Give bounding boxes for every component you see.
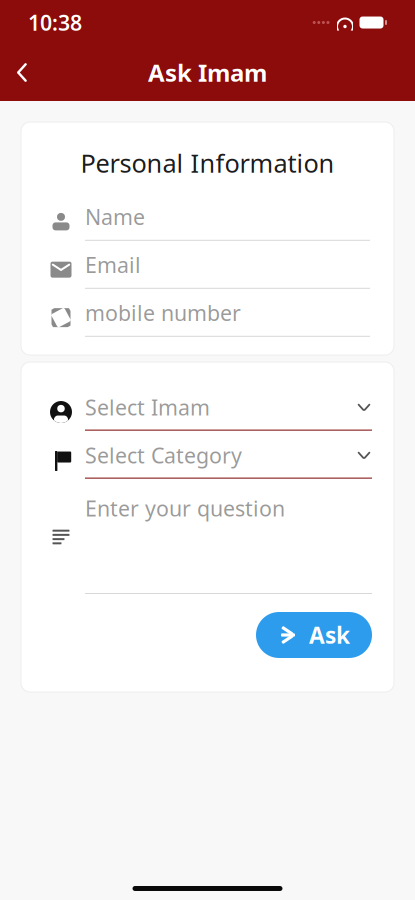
staticText: Select Category [85,441,242,469]
button[interactable]: Name [21,198,394,246]
button[interactable]: Back [0,50,44,94]
staticText: Enter your question [85,494,285,522]
button[interactable]: mobile number [21,294,394,342]
button[interactable]: Ask [256,612,372,658]
staticText: Ask [309,620,350,650]
button[interactable]: Select Category [21,436,394,484]
staticText: Email [85,250,141,279]
staticText: Ask Imam [148,57,267,88]
staticText: mobile number [85,298,241,327]
button[interactable]: Email [21,246,394,294]
button[interactable]: Enter your question [21,484,394,594]
staticText: Select Imam [85,393,210,421]
staticText: Personal Information [80,146,334,180]
button[interactable]: Select Imam [21,388,394,436]
staticText: Name [85,202,145,231]
staticText: 10:38 [28,8,82,37]
